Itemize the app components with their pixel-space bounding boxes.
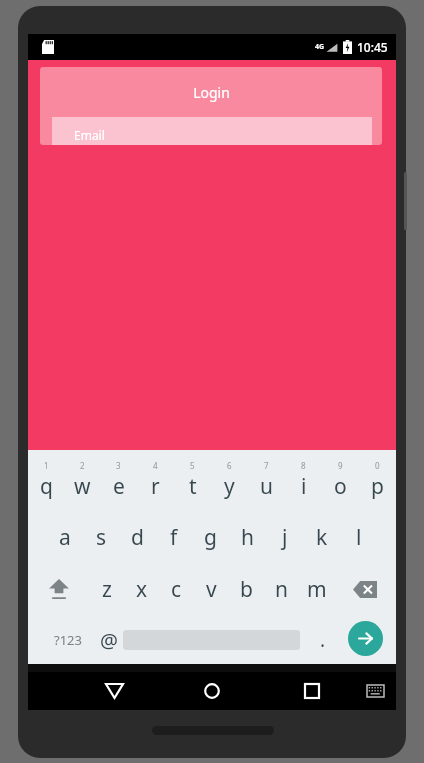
staticText: 10:45: [357, 39, 388, 55]
button[interactable]: s: [83, 512, 119, 562]
button[interactable]: 2: [64, 456, 100, 508]
button[interactable]: 9: [322, 456, 359, 508]
staticText: v: [206, 575, 217, 604]
button[interactable]: Login: [40, 67, 382, 145]
button[interactable]: 5: [174, 456, 211, 508]
button[interactable]: b: [229, 564, 264, 614]
staticText: i: [301, 472, 307, 501]
button[interactable]: 7: [248, 456, 285, 508]
button[interactable]: 0: [359, 456, 396, 508]
button[interactable]: 8: [285, 456, 322, 508]
staticText: k: [316, 523, 328, 552]
staticText: 6: [227, 460, 232, 471]
button[interactable]: @: [86, 618, 132, 662]
button[interactable]: 6: [211, 456, 248, 508]
button[interactable]: Shift: [36, 564, 82, 614]
button[interactable]: .: [305, 618, 341, 662]
button[interactable]: x: [124, 564, 159, 614]
button[interactable]: 3: [100, 456, 137, 508]
staticText: a: [59, 523, 71, 552]
button[interactable]: v: [194, 564, 229, 614]
staticText: 0: [375, 460, 380, 471]
staticText: ?123: [54, 631, 82, 649]
staticText: f: [170, 523, 178, 552]
staticText: w: [74, 472, 91, 501]
staticText: d: [131, 523, 144, 552]
staticText: y: [224, 472, 235, 501]
staticText: h: [241, 523, 254, 552]
staticText: 4G: [315, 42, 325, 52]
staticText: m: [307, 575, 327, 604]
button[interactable]: a: [47, 512, 83, 562]
button[interactable]: z: [90, 564, 124, 614]
button[interactable]: Backspace: [342, 564, 388, 614]
staticText: u: [260, 472, 273, 501]
button[interactable]: h: [229, 512, 266, 562]
staticText: 2: [80, 460, 85, 471]
button[interactable]: n: [264, 564, 299, 614]
staticText: j: [282, 523, 288, 552]
staticText: @: [100, 627, 118, 654]
staticText: o: [334, 472, 347, 501]
button[interactable]: g: [192, 512, 229, 562]
button[interactable]: 1: [28, 456, 64, 508]
staticText: 4: [153, 460, 158, 471]
button[interactable]: l: [340, 512, 377, 562]
staticText: 3: [116, 460, 121, 471]
button[interactable]: Keyboard: [355, 672, 395, 710]
staticText: p: [371, 472, 384, 501]
staticText: Email: [74, 127, 105, 143]
staticText: c: [171, 575, 182, 604]
staticText: s: [96, 523, 107, 552]
staticText: q: [40, 472, 53, 501]
button[interactable]: Back: [86, 672, 142, 710]
staticText: e: [113, 472, 125, 501]
staticText: t: [189, 472, 197, 501]
staticText: 7: [264, 460, 269, 471]
button[interactable]: f: [155, 512, 192, 562]
staticText: b: [240, 575, 253, 604]
button[interactable]: m: [299, 564, 334, 614]
button[interactable]: k: [303, 512, 340, 562]
button[interactable]: c: [159, 564, 194, 614]
staticText: 9: [338, 460, 343, 471]
button[interactable]: Home: [184, 672, 240, 710]
staticText: Login: [193, 83, 230, 102]
button[interactable]: 4: [137, 456, 174, 508]
staticText: .: [320, 627, 326, 653]
button[interactable]: Enter: [348, 621, 383, 656]
staticText: r: [151, 472, 160, 501]
staticText: g: [204, 523, 217, 552]
staticText: x: [136, 575, 148, 604]
button[interactable]: d: [119, 512, 155, 562]
staticText: 5: [190, 460, 195, 471]
button[interactable]: ?123: [42, 618, 94, 662]
staticText: z: [102, 575, 112, 604]
staticText: n: [275, 575, 288, 604]
staticText: 8: [301, 460, 306, 471]
staticText: 1: [44, 460, 49, 471]
button[interactable]: Recents: [284, 672, 340, 710]
staticText: l: [356, 523, 362, 552]
button[interactable]: Email: [52, 117, 372, 145]
button[interactable]: j: [266, 512, 303, 562]
